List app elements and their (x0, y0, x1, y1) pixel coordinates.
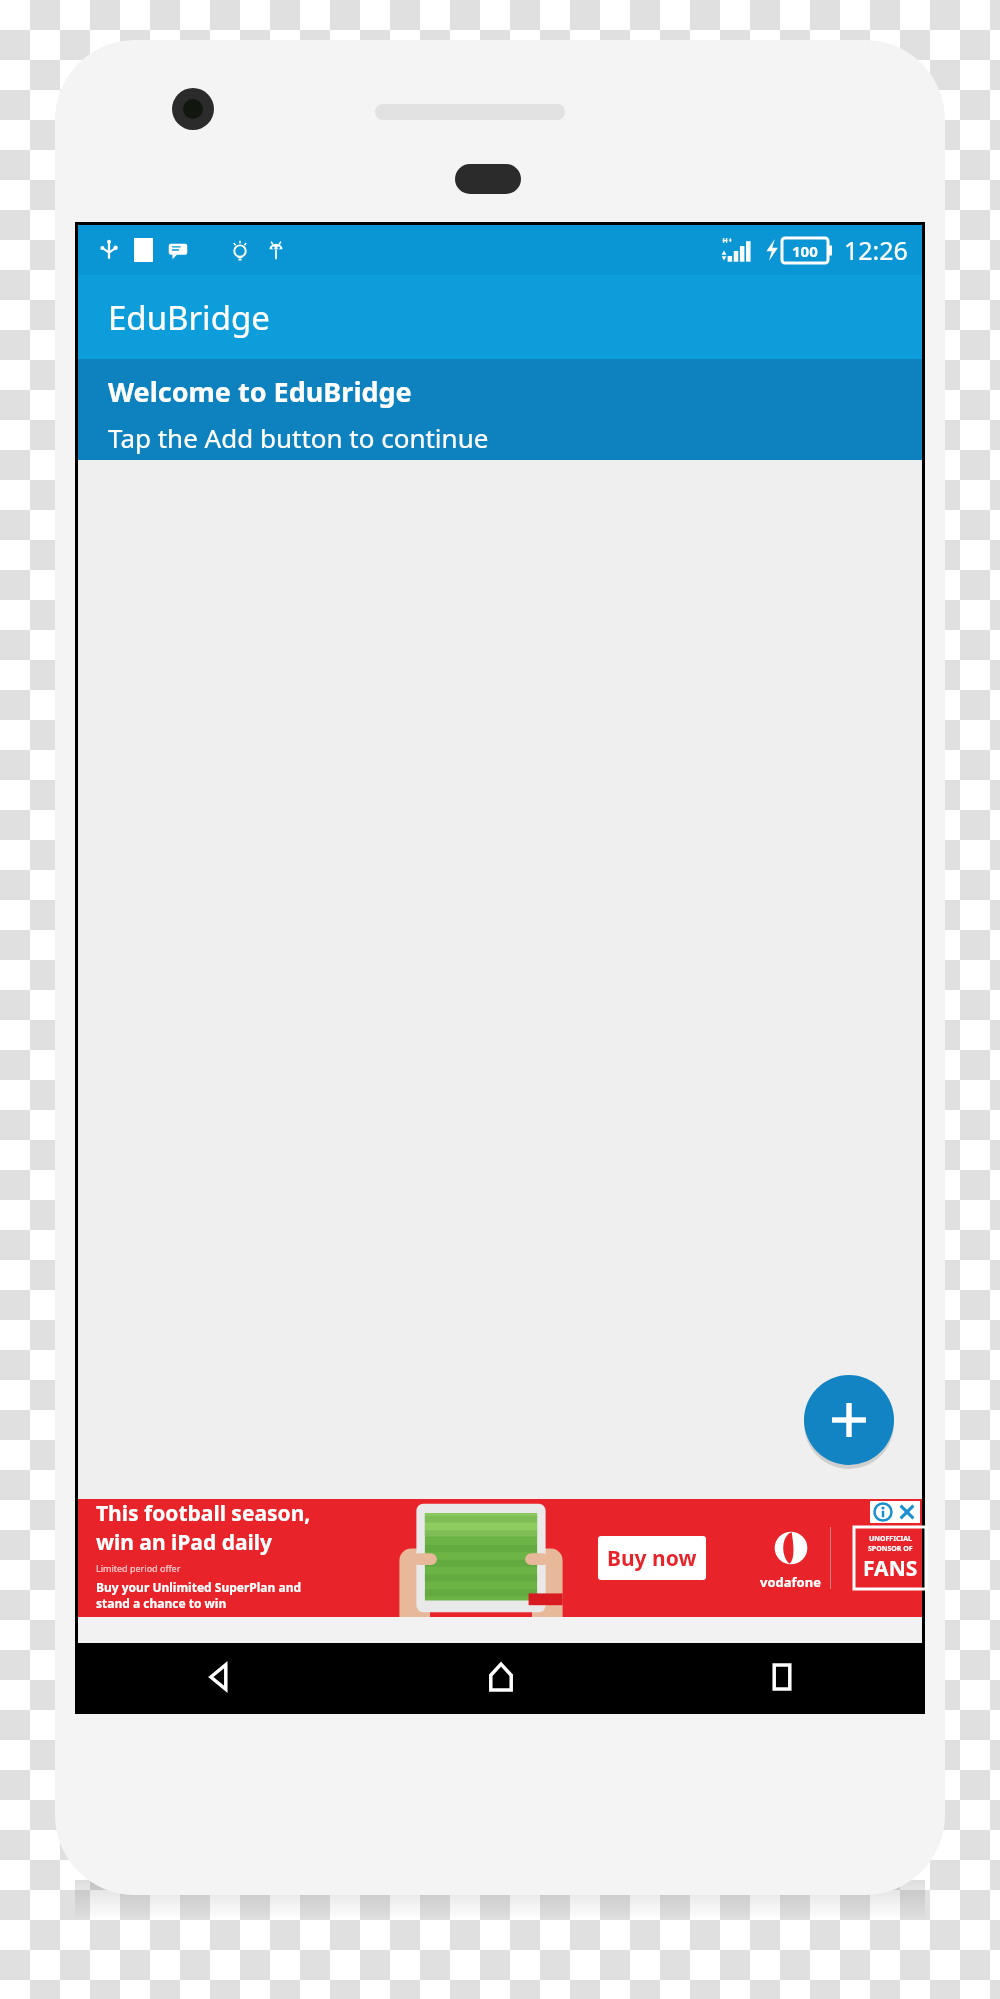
staticText: FANS (863, 1554, 918, 1583)
staticText: win an iPad daily (96, 1528, 273, 1557)
button[interactable]: Add (804, 1375, 894, 1465)
button[interactable]: Close ad (897, 1502, 917, 1522)
staticText: EduBridge (108, 295, 270, 340)
staticText: 12:26 (844, 233, 908, 267)
button[interactable]: Home (360, 1643, 641, 1711)
button[interactable]: Buy now (598, 1536, 706, 1580)
staticText: 100 (792, 241, 818, 261)
button[interactable]: Back (78, 1643, 360, 1711)
staticText: Buy your Unlimited SuperPlan and (96, 1579, 302, 1595)
staticText: Buy now (607, 1544, 697, 1573)
button[interactable]: This football season, (78, 1499, 922, 1617)
staticText: stand a chance to win (96, 1595, 227, 1611)
button[interactable]: Welcome to EduBridge (78, 359, 922, 460)
staticText: UNOFFICIAL (869, 1534, 912, 1544)
staticText: This football season, (96, 1499, 311, 1528)
staticText: vodafone (760, 1573, 821, 1591)
staticText: SPONSOR OF (868, 1544, 913, 1554)
button[interactable]: Recent apps (641, 1643, 922, 1711)
staticText: Welcome to EduBridge (108, 373, 412, 410)
staticText: Tap the Add button to continue (108, 420, 489, 455)
button[interactable]: Ad information (873, 1502, 893, 1522)
staticText: Limited period offer (96, 1562, 181, 1574)
